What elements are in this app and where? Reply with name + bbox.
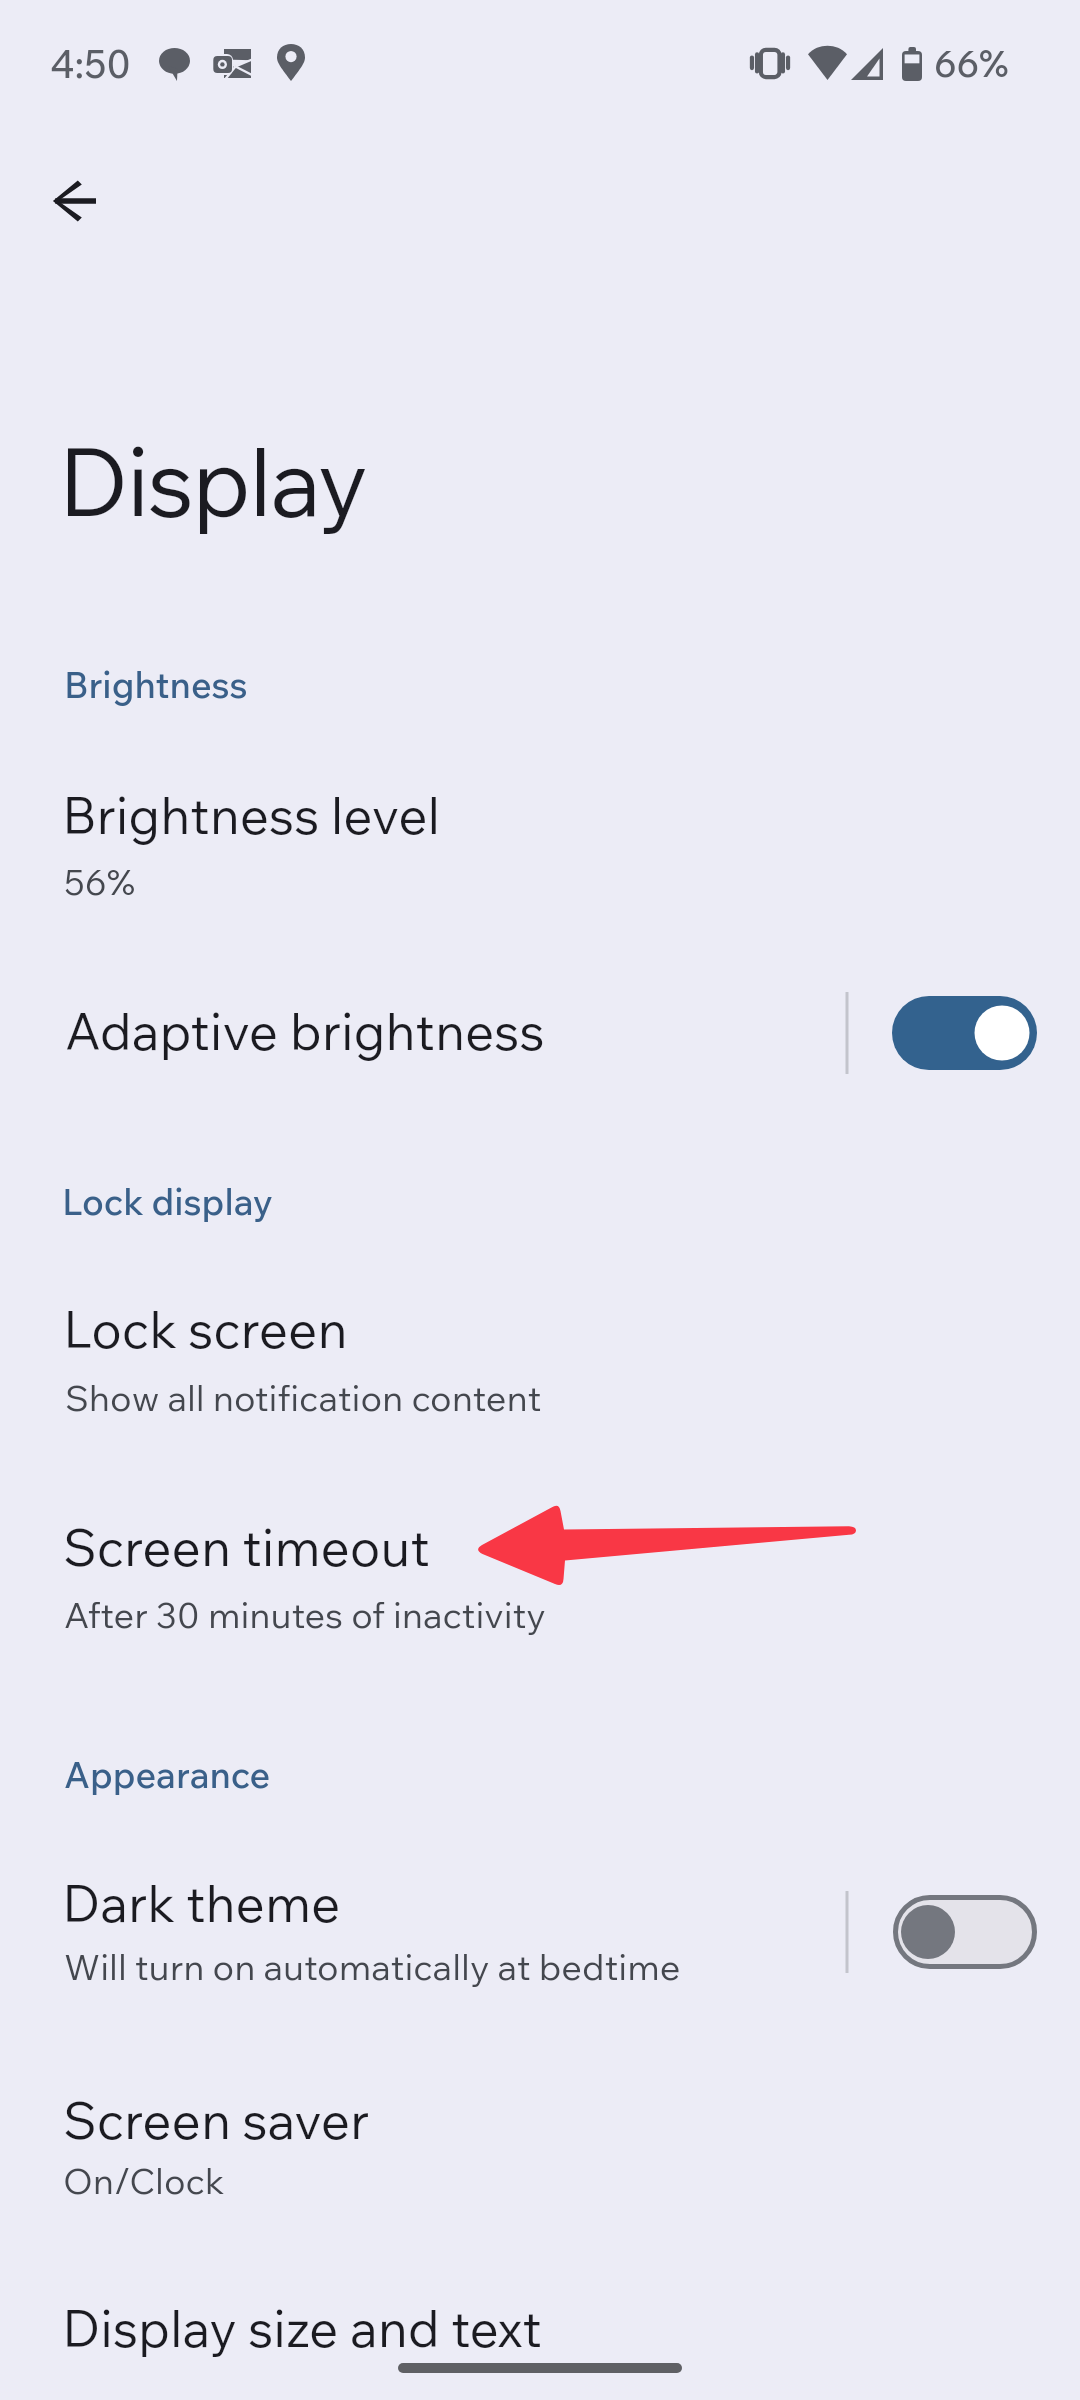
staticText: Brightness level bbox=[62, 783, 441, 847]
staticText: 4:50 bbox=[50, 40, 131, 88]
staticText: 56% bbox=[64, 859, 136, 904]
staticText: On/Clock bbox=[63, 2158, 225, 2203]
staticText: After 30 minutes of inactivity bbox=[64, 1592, 546, 1637]
staticText: Lock screen bbox=[63, 1297, 348, 1361]
staticText: Screen saver bbox=[63, 2088, 370, 2152]
staticText: 66% bbox=[934, 40, 1009, 87]
staticText: Brightness bbox=[64, 662, 248, 707]
staticText: Will turn on automatically at bedtime bbox=[64, 1944, 681, 1989]
staticText: Dark theme bbox=[62, 1871, 341, 1935]
staticText: Display size and text bbox=[62, 2296, 542, 2360]
staticText: Lock display bbox=[62, 1179, 273, 1224]
button[interactable]: Adaptive brightness toggle bbox=[820, 975, 1050, 1091]
staticText: Show all notification content bbox=[65, 1375, 542, 1420]
staticText: Display bbox=[58, 421, 367, 539]
staticText: Adaptive brightness bbox=[65, 999, 545, 1063]
button[interactable]: Back bbox=[29, 157, 119, 247]
staticText: Appearance bbox=[64, 1752, 271, 1797]
button[interactable]: Dark theme toggle bbox=[820, 1874, 1050, 1990]
staticText: Screen timeout bbox=[63, 1515, 430, 1579]
